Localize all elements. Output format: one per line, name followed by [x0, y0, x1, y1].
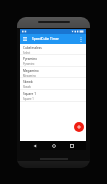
button[interactable]: More options	[77, 35, 85, 43]
button[interactable]: Back	[30, 141, 39, 150]
button[interactable]: Pyraminx	[20, 55, 86, 66]
button[interactable]: Skewb	[20, 78, 86, 89]
staticText: Megaminx	[23, 69, 39, 73]
staticText: Pyraminx	[23, 57, 37, 61]
button[interactable]: Square 1	[20, 90, 86, 101]
staticText: Select	[23, 51, 31, 54]
staticText: Skewb	[23, 85, 31, 89]
button[interactable]: Megaminx	[20, 67, 86, 77]
staticText: Megaminx	[23, 74, 36, 77]
button[interactable]: Home	[49, 141, 58, 150]
staticText: Cubelessless	[23, 46, 42, 50]
staticText: Square 1	[23, 97, 34, 101]
staticText: Pyraminx	[23, 62, 35, 66]
staticText: SpeedCube Timer	[32, 37, 59, 41]
staticText: Skewb	[23, 80, 33, 84]
button[interactable]: Recent apps	[67, 141, 76, 150]
button[interactable]: Open navigation menu	[21, 35, 29, 43]
button[interactable]: Add solve	[74, 122, 84, 132]
staticText: Square 1	[23, 92, 36, 96]
button[interactable]: Cubelessless	[20, 44, 86, 54]
